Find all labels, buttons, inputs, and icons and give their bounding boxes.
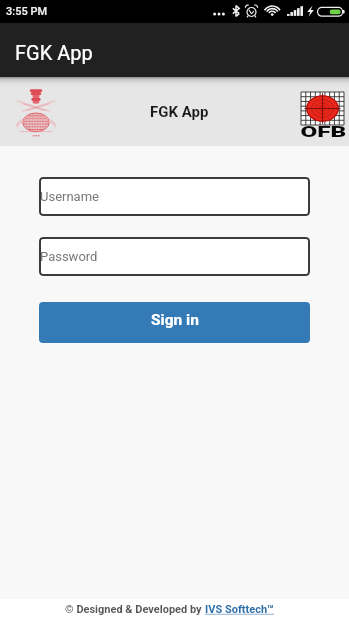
staticText: © Designed & Developed by [65,603,205,616]
staticText: 3:55 PM [6,5,48,18]
staticText: Username [40,189,99,204]
staticText: Sign in [151,311,199,329]
button[interactable]: Sign in [39,302,310,343]
button[interactable]: IVS Softtech™ [205,603,275,616]
button[interactable]: Username [39,177,310,216]
other: Ordnance Factory emblem [16,87,56,139]
button[interactable]: Password [39,237,310,276]
staticText: OFB [300,124,347,141]
staticText: Password [40,249,98,264]
staticText: FGK App [150,103,209,121]
staticText: FGK App [15,41,93,64]
